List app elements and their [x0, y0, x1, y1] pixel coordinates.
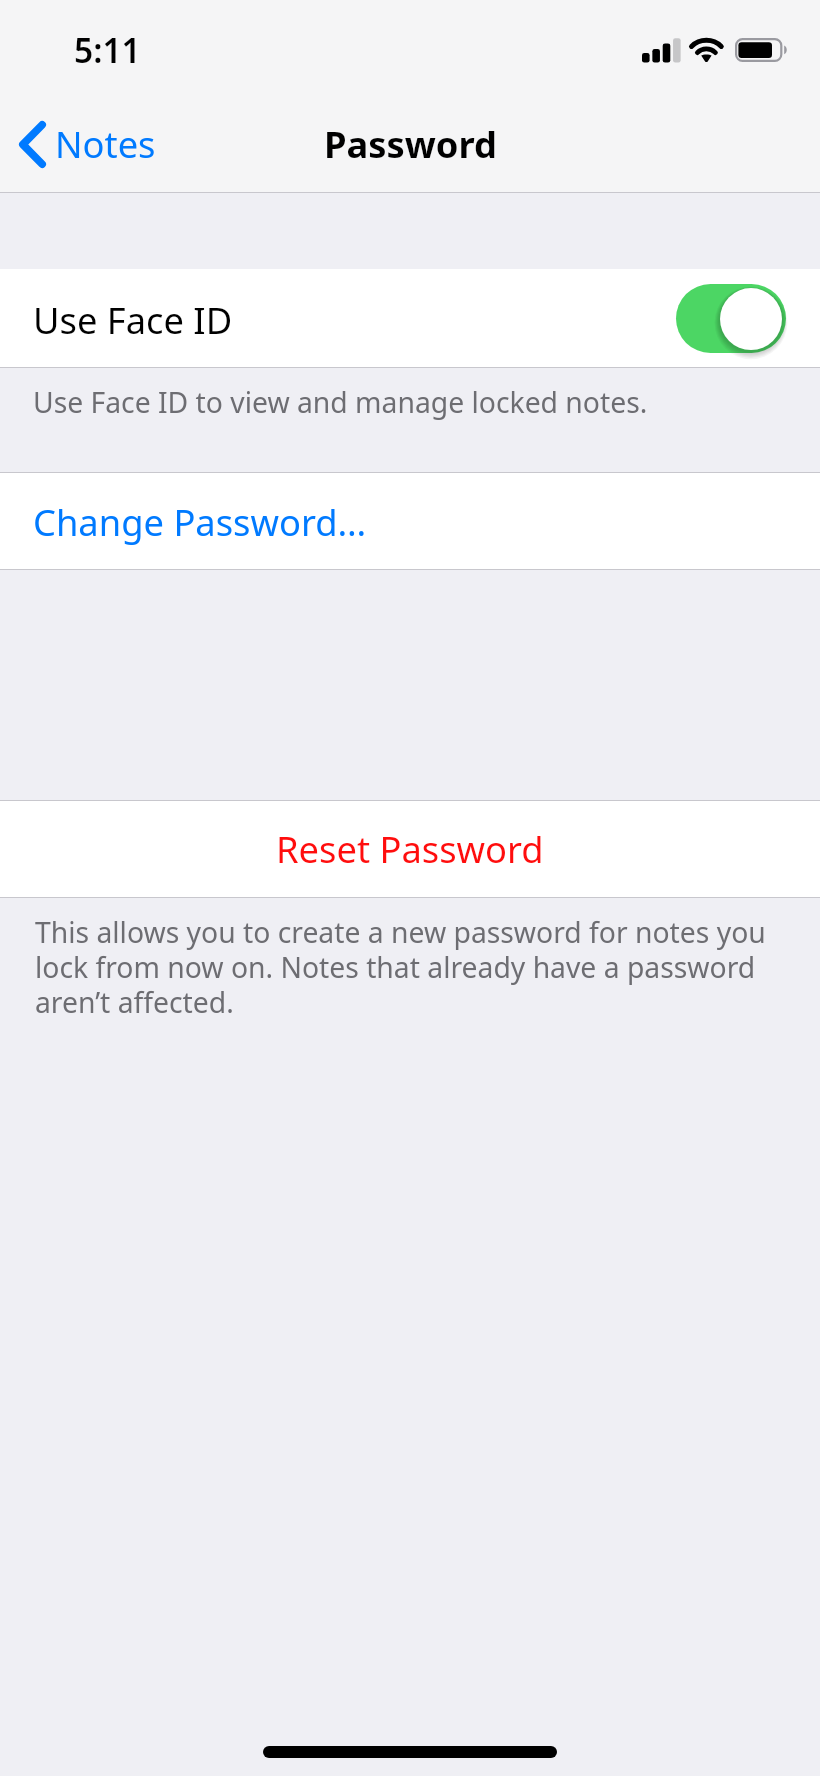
staticText: Change Password…	[33, 497, 367, 546]
staticText: Reset Password	[276, 824, 544, 873]
staticText: Notes	[55, 119, 156, 168]
staticText: 5:11	[74, 27, 141, 73]
staticText: This allows you to create a new password…	[35, 913, 785, 1022]
staticText: Password	[324, 119, 497, 168]
button[interactable]: Change Password…	[0, 473, 820, 569]
button[interactable]: Reset Password	[0, 801, 820, 897]
button[interactable]: Use Face ID	[0, 269, 820, 367]
button[interactable]: Back to Notes	[0, 96, 156, 192]
staticText: Use Face ID	[33, 295, 233, 344]
staticText: Use Face ID to view and manage locked no…	[33, 383, 648, 422]
button[interactable]: Use Face ID, on	[676, 284, 787, 353]
